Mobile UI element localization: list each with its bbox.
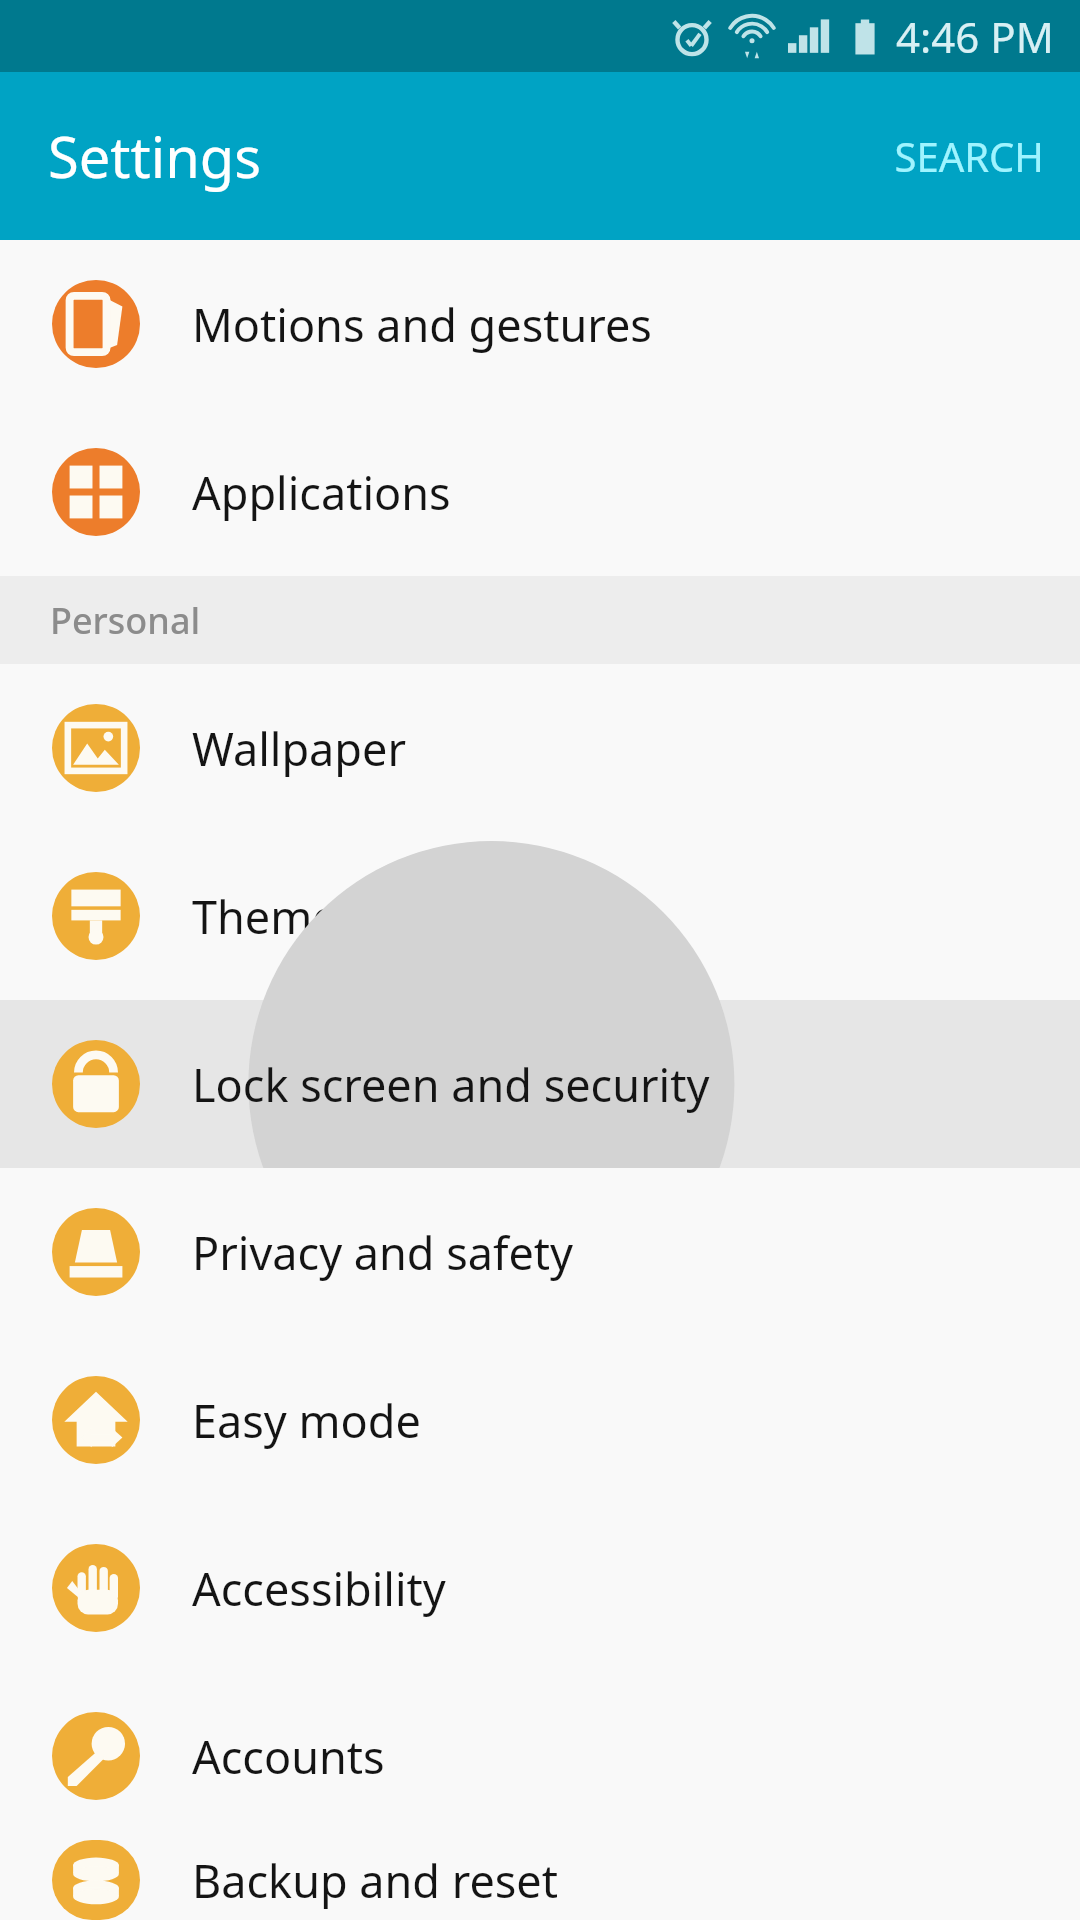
button[interactable]: Privacy and safety: [0, 1168, 1080, 1336]
staticText: SEARCH: [894, 129, 1044, 183]
button[interactable]: Applications: [0, 408, 1080, 576]
staticText: Accessibility: [192, 1558, 446, 1619]
staticText: Backup and reset: [192, 1850, 558, 1911]
staticText: Applications: [192, 462, 451, 523]
button[interactable]: Accounts: [0, 1672, 1080, 1840]
button[interactable]: Motions and gestures: [0, 240, 1080, 408]
button[interactable]: Wallpaper: [0, 664, 1080, 832]
staticText: Wallpaper: [192, 718, 406, 779]
staticText: Motions and gestures: [192, 294, 652, 355]
button[interactable]: Accessibility: [0, 1504, 1080, 1672]
staticText: Lock screen and security: [192, 1054, 710, 1115]
staticText: Easy mode: [192, 1390, 421, 1451]
button[interactable]: Themes: [0, 832, 1080, 1000]
staticText: Personal: [50, 596, 201, 645]
staticText: Privacy and safety: [192, 1222, 574, 1283]
staticText: 4:46 PM: [896, 8, 1054, 65]
button[interactable]: Backup and reset: [0, 1840, 1080, 1920]
button[interactable]: SEARCH: [858, 103, 1080, 209]
button[interactable]: Lock screen and security: [0, 1000, 1080, 1168]
button[interactable]: Easy mode: [0, 1336, 1080, 1504]
staticText: Settings: [48, 118, 262, 194]
staticText: Accounts: [192, 1726, 385, 1787]
staticText: Themes: [192, 886, 360, 947]
